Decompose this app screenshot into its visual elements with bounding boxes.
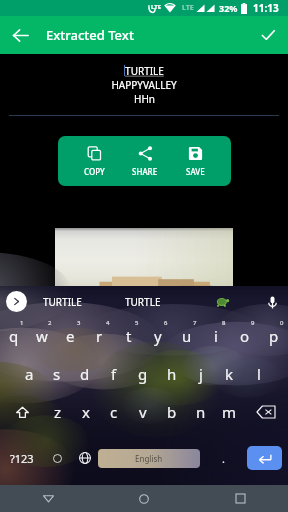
staticText: 11:13 <box>253 1 279 15</box>
staticText: TURTILE <box>43 295 82 309</box>
button[interactable]: p <box>259 317 288 355</box>
staticText: i <box>214 326 218 346</box>
button[interactable]: g <box>128 355 157 393</box>
button[interactable]: q <box>0 317 28 355</box>
button[interactable]: SAVE <box>170 136 220 186</box>
button[interactable]: d <box>71 355 99 393</box>
staticText: c <box>110 402 118 422</box>
button[interactable]: Delete <box>244 393 288 431</box>
staticText: f <box>111 364 117 384</box>
staticText: COPY <box>84 166 105 177</box>
staticText: 32% <box>219 2 238 14</box>
staticText: 1 <box>20 319 24 327</box>
button[interactable]: Change keyboard language <box>71 431 98 485</box>
staticText: a <box>25 364 34 384</box>
staticText: 0 <box>280 319 284 327</box>
staticText: 4 <box>106 319 110 327</box>
button[interactable]: Voice input <box>262 292 282 312</box>
button[interactable]: Navigate up <box>5 20 35 50</box>
staticText: k <box>225 364 234 384</box>
button[interactable]: z <box>44 393 72 431</box>
staticText: v <box>139 402 147 422</box>
button[interactable]: Shift <box>0 393 44 431</box>
button[interactable]: n <box>186 393 215 431</box>
staticText: SHARE <box>132 166 158 177</box>
staticText: l <box>257 364 261 384</box>
staticText: 2 <box>48 319 52 327</box>
staticText: e <box>66 326 75 346</box>
staticText: HHn <box>134 92 155 106</box>
button[interactable]: English <box>98 449 200 468</box>
staticText: 3 <box>77 319 81 327</box>
staticText: 8 <box>222 319 226 327</box>
staticText: TURTLE <box>125 295 161 309</box>
button[interactable]: s <box>43 355 71 393</box>
staticText: 7 <box>193 319 197 327</box>
button[interactable]: . <box>200 431 247 485</box>
staticText: y <box>154 326 162 346</box>
staticText: t <box>126 326 132 346</box>
button[interactable]: TURTLE <box>113 286 173 317</box>
button[interactable]: SHARE <box>120 136 170 186</box>
staticText: Extracted Text <box>46 26 134 44</box>
staticText: TURTILE <box>125 64 164 78</box>
button[interactable]: y <box>143 317 172 355</box>
button[interactable]: k <box>215 355 244 393</box>
button[interactable]: ?123 <box>0 431 44 485</box>
button[interactable]: Recent apps <box>192 485 288 512</box>
staticText: o <box>240 326 250 346</box>
staticText: h <box>167 364 177 384</box>
button[interactable]: Show more suggestions <box>6 291 27 312</box>
button[interactable]: f <box>99 355 128 393</box>
staticText: HAPPYVALLEY <box>111 78 177 92</box>
button[interactable]: v <box>128 393 157 431</box>
staticText: w <box>36 326 48 346</box>
staticText: p <box>269 326 279 346</box>
button[interactable]: COPY <box>69 136 120 186</box>
staticText: g <box>138 364 148 384</box>
button[interactable]: t <box>114 317 143 355</box>
button[interactable]: w <box>28 317 56 355</box>
staticText: English <box>135 453 163 464</box>
staticText: u <box>182 326 192 346</box>
staticText: z <box>54 402 62 422</box>
staticText: . <box>222 451 225 466</box>
button[interactable]: TURTILE <box>32 286 92 317</box>
staticText: LTE <box>182 3 194 13</box>
button[interactable]: a <box>15 355 43 393</box>
button[interactable]: Enter <box>247 446 282 470</box>
button[interactable]: m <box>215 393 244 431</box>
button[interactable]: Back <box>0 485 96 512</box>
button[interactable]: Done <box>253 20 283 50</box>
button[interactable]: e <box>56 317 85 355</box>
button[interactable]: r <box>85 317 114 355</box>
button[interactable]: o <box>230 317 259 355</box>
button[interactable]: Home <box>96 485 192 512</box>
button[interactable]: h <box>157 355 186 393</box>
button[interactable]: Emoji <box>44 431 71 485</box>
staticText: b <box>167 402 177 422</box>
button[interactable]: c <box>100 393 128 431</box>
staticText: r <box>96 326 103 346</box>
staticText: SAVE <box>186 166 205 177</box>
button[interactable]: u <box>172 317 201 355</box>
staticText: x <box>82 402 90 422</box>
button[interactable]: b <box>157 393 186 431</box>
staticText: q <box>9 326 19 346</box>
staticText: LTE <box>151 3 162 11</box>
staticText: d <box>80 364 90 384</box>
button[interactable]: i <box>201 317 230 355</box>
staticText: s <box>53 364 61 384</box>
button[interactable]: l <box>244 355 273 393</box>
staticText: n <box>196 402 206 422</box>
staticText: 5 <box>135 319 139 327</box>
button[interactable]: x <box>72 393 100 431</box>
staticText: ?123 <box>10 451 34 466</box>
staticText: m <box>222 402 237 422</box>
staticText: 9 <box>251 319 255 327</box>
staticText: j <box>199 364 203 384</box>
staticText: 6 <box>164 319 168 327</box>
button[interactable]: j <box>186 355 215 393</box>
